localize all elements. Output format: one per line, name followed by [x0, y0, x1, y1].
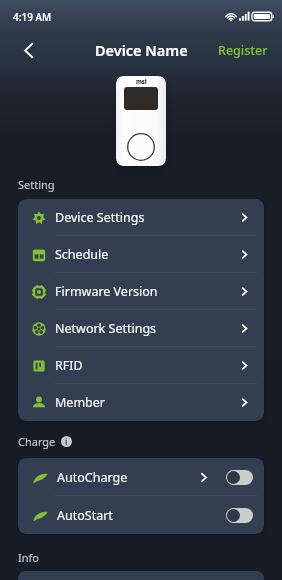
staticText: Network Settings: [55, 320, 157, 337]
button[interactable]: Member: [18, 384, 264, 421]
button[interactable]: Network Settings: [18, 310, 264, 347]
button[interactable]: Firmware Version: [18, 273, 264, 310]
staticText: Register: [218, 42, 268, 59]
staticText: Schedule: [55, 246, 109, 263]
staticText: Setting: [18, 177, 55, 192]
staticText: Firmware Version: [55, 283, 158, 300]
staticText: Member: [55, 394, 105, 411]
button[interactable]: AutoCharge: [18, 458, 264, 496]
staticText: Device Name: [95, 40, 188, 60]
button[interactable]: Device Settings: [18, 199, 264, 236]
staticText: Info: [18, 550, 39, 565]
button[interactable]: AutoCharge: [226, 470, 253, 485]
button[interactable]: Back: [8, 30, 48, 70]
button[interactable]: AutoStart: [18, 496, 264, 534]
button[interactable]: Schedule: [18, 236, 264, 273]
staticText: Charge: [18, 434, 56, 449]
staticText: AutoStart: [57, 507, 113, 524]
staticText: 4:19 AM: [13, 10, 52, 24]
staticText: msi: [136, 78, 147, 86]
button[interactable]: AutoStart: [226, 508, 253, 523]
staticText: RFID: [55, 357, 83, 374]
staticText: i: [65, 436, 68, 447]
staticText: Device Settings: [55, 209, 145, 226]
button[interactable]: RFID: [18, 347, 264, 384]
button[interactable]: Register: [204, 34, 282, 67]
staticText: AutoCharge: [57, 469, 128, 486]
button[interactable]: Charge info: [61, 436, 72, 447]
